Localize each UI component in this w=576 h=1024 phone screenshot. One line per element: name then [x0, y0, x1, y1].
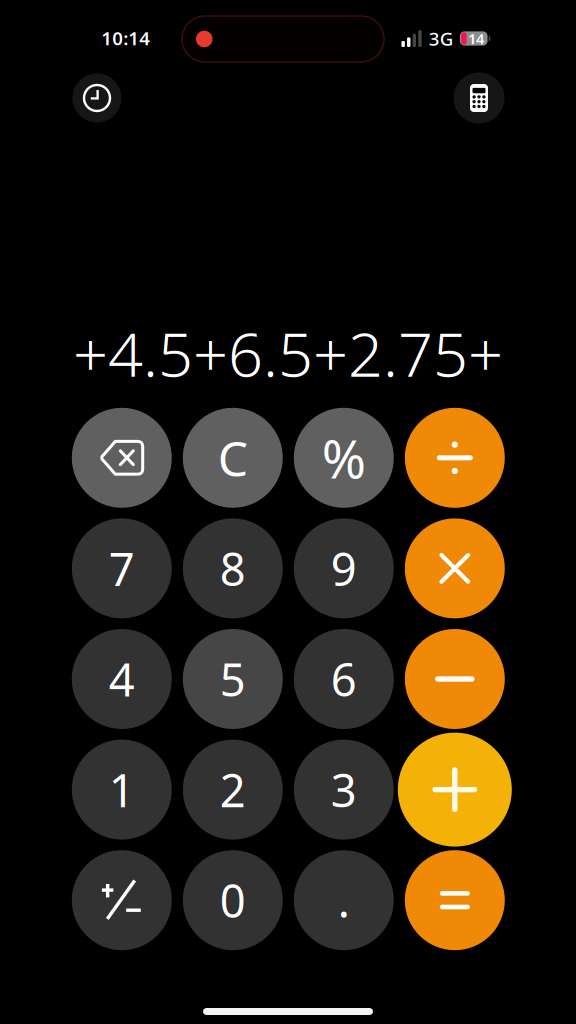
staticText: 10:14	[101, 26, 150, 50]
staticText: 5	[220, 649, 246, 709]
button[interactable]: 2	[183, 740, 283, 840]
staticText: 0	[220, 870, 246, 930]
staticText: 1	[109, 759, 135, 820]
button[interactable]: 5	[183, 629, 283, 729]
staticText: %	[322, 422, 366, 493]
button[interactable]: 1	[72, 740, 172, 840]
staticText: C	[218, 426, 248, 490]
staticText: .	[338, 870, 350, 930]
button[interactable]: Add	[398, 733, 512, 847]
staticText: 8	[220, 538, 246, 598]
button[interactable]: Calculator	[453, 72, 504, 123]
button[interactable]: 0	[183, 850, 283, 950]
button[interactable]: Equals	[405, 850, 505, 950]
button[interactable]: C	[183, 408, 283, 508]
staticText: 2	[220, 759, 246, 820]
button[interactable]: %	[294, 408, 394, 508]
staticText: 4	[109, 649, 135, 709]
button[interactable]: 7	[72, 518, 172, 618]
button[interactable]: .	[294, 850, 394, 950]
button[interactable]: Delete	[72, 408, 172, 508]
staticText: +4.5+6.5+2.75+	[73, 312, 503, 394]
button[interactable]: 6	[294, 629, 394, 729]
staticText: 14	[468, 29, 484, 48]
staticText: 7	[109, 538, 135, 598]
button[interactable]: Divide	[405, 408, 505, 508]
button[interactable]: History	[72, 73, 121, 122]
button[interactable]: Subtract	[405, 629, 505, 729]
staticText: 9	[331, 538, 357, 598]
staticText: 3	[331, 759, 357, 820]
staticText: 6	[331, 649, 357, 709]
button[interactable]: 8	[183, 518, 283, 618]
button[interactable]: Multiply	[405, 518, 505, 618]
button[interactable]: 3	[294, 740, 394, 840]
button[interactable]: 4	[72, 629, 172, 729]
button[interactable]: 9	[294, 518, 394, 618]
staticText: 3G	[429, 26, 454, 51]
button[interactable]: Plus minus	[72, 850, 172, 950]
